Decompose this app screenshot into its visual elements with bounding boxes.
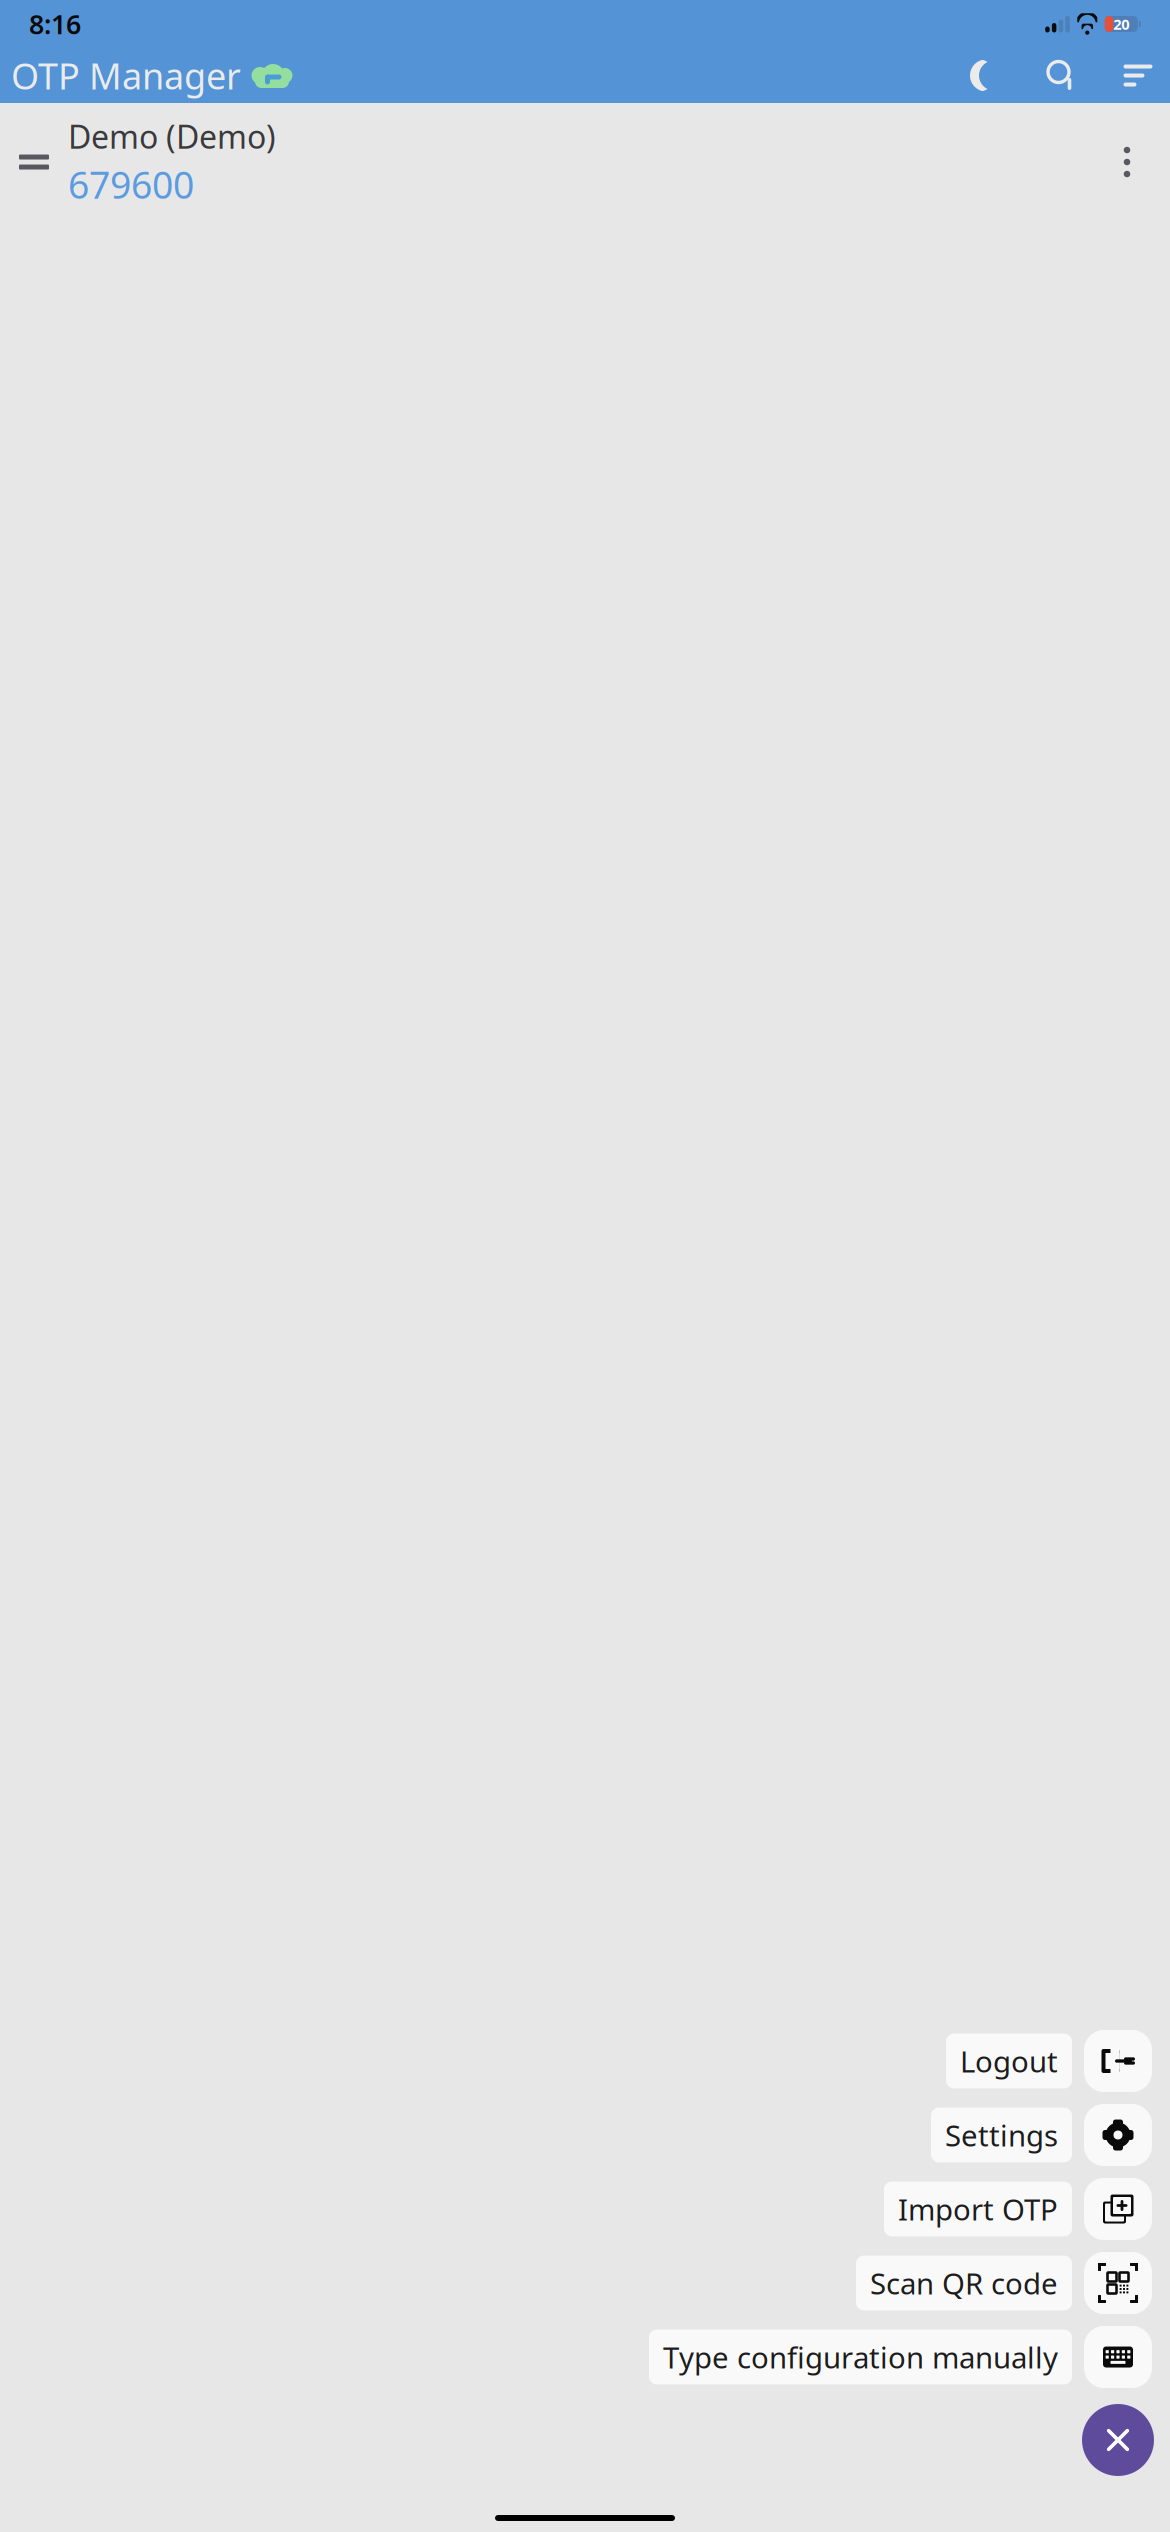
staticText: Type configuration manually — [663, 2337, 1058, 2376]
staticText: 20 — [1113, 14, 1129, 34]
button[interactable]: Search — [1040, 53, 1084, 97]
staticText: 8:16 — [29, 6, 81, 42]
staticText: Settings — [945, 2115, 1058, 2154]
staticText: Scan QR code — [870, 2263, 1058, 2302]
button[interactable]: Settings — [931, 2107, 1072, 2162]
button[interactable]: Toggle dark mode — [964, 53, 1008, 97]
button[interactable]: Logout — [946, 2033, 1072, 2088]
button[interactable]: Sort — [1116, 53, 1160, 97]
staticText: Demo (Demo) — [68, 115, 276, 157]
button[interactable]: Logout — [1084, 2030, 1152, 2092]
button[interactable]: Demo (Demo) — [0, 103, 1170, 209]
staticText: 679600 — [68, 159, 194, 209]
staticText: Logout — [960, 2041, 1058, 2080]
button[interactable]: Type configuration manually — [1084, 2326, 1152, 2388]
button[interactable]: Settings — [1084, 2104, 1152, 2166]
button[interactable]: Import OTP — [1084, 2178, 1152, 2240]
button[interactable]: Scan QR code — [1084, 2252, 1152, 2314]
button[interactable]: Close menu — [1082, 2404, 1154, 2476]
button[interactable]: Scan QR code — [856, 2255, 1072, 2310]
staticText: OTP Manager — [11, 52, 241, 99]
button[interactable]: Type configuration manually — [649, 2329, 1072, 2384]
staticText: Import OTP — [898, 2189, 1058, 2228]
button[interactable]: Import OTP — [884, 2181, 1072, 2236]
